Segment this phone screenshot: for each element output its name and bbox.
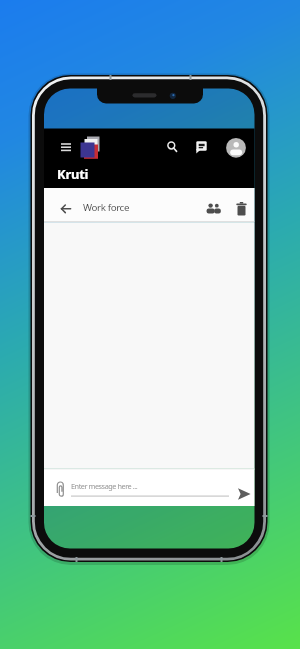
button[interactable]: [57, 139, 75, 155]
button[interactable]: [79, 134, 101, 160]
staticText: Kruti: [57, 165, 89, 183]
button[interactable]: [225, 137, 247, 159]
button[interactable]: [234, 484, 254, 502]
staticText: Enter message here ...: [71, 481, 138, 491]
staticText: Work force: [83, 201, 130, 214]
button[interactable]: [52, 478, 69, 498]
button[interactable]: Enter message here ...: [70, 474, 231, 500]
button[interactable]: [204, 200, 224, 217]
button[interactable]: [233, 200, 250, 218]
button[interactable]: [57, 200, 75, 217]
button[interactable]: [190, 137, 208, 155]
button[interactable]: [163, 137, 181, 155]
